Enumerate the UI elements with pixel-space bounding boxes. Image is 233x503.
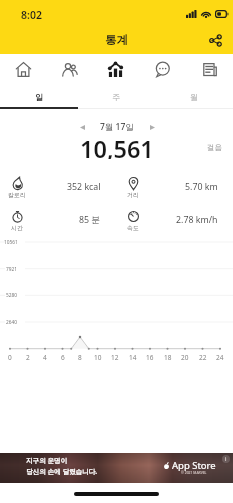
- staticText: 14: [129, 353, 137, 362]
- button[interactable]: 월: [155, 86, 233, 108]
- button[interactable]: 일: [0, 86, 77, 108]
- staticText: 일: [35, 92, 43, 102]
- staticText: 칼로리: [8, 191, 26, 199]
- button[interactable]: Next day: [143, 118, 161, 136]
- staticText: 속도: [127, 224, 139, 232]
- button[interactable]: Friends: [0, 54, 46, 84]
- button[interactable]: Previous day: [73, 118, 91, 136]
- button[interactable]: 칼로리: [0, 172, 116, 205]
- staticText: 월: [190, 92, 198, 102]
- staticText: 16: [146, 353, 154, 362]
- button[interactable]: 지구의 운명이: [0, 453, 233, 483]
- staticText: 통계: [105, 33, 128, 47]
- button[interactable]: Chats: [46, 54, 92, 84]
- button[interactable]: Open Chat: [139, 54, 186, 84]
- staticText: © 2021 MARVEL: [181, 470, 207, 475]
- staticText: 8: [78, 353, 82, 362]
- button[interactable]: 시간: [0, 205, 116, 238]
- staticText: 2.78 km/h: [176, 214, 218, 226]
- staticText: 주: [112, 92, 120, 102]
- staticText: 20: [181, 353, 189, 362]
- staticText: 8:02: [21, 8, 42, 22]
- staticText: 10: [94, 353, 102, 362]
- button[interactable]: Share: [203, 28, 227, 52]
- staticText: 18: [164, 353, 172, 362]
- staticText: 시간: [11, 224, 23, 232]
- button[interactable]: Ad info: [222, 455, 230, 463]
- staticText: 5280: [6, 292, 17, 299]
- button[interactable]: 거리: [116, 172, 233, 205]
- button[interactable]: Stats: [92, 54, 139, 84]
- staticText: 거리: [127, 191, 139, 199]
- staticText: 2640: [6, 319, 17, 326]
- staticText: 22: [199, 353, 207, 362]
- staticText: App Store: [172, 459, 216, 472]
- staticText: 10,561: [80, 133, 154, 159]
- staticText: 2: [26, 353, 30, 362]
- staticText: 7921: [6, 266, 17, 273]
- staticText: 85 분: [79, 214, 101, 226]
- staticText: 0: [8, 353, 12, 362]
- staticText: 5.70 km: [185, 181, 218, 193]
- button[interactable]: 속도: [116, 205, 233, 238]
- button[interactable]: More: [186, 54, 233, 84]
- staticText: 7월 17일: [100, 121, 134, 133]
- staticText: 걸음: [207, 143, 222, 152]
- staticText: 4: [43, 353, 47, 362]
- staticText: 지구의 운명이: [26, 456, 68, 465]
- staticText: 352 kcal: [67, 181, 101, 193]
- staticText: 12: [111, 353, 119, 362]
- staticText: 10561: [4, 239, 18, 246]
- staticText: i: [225, 456, 227, 462]
- staticText: 6: [61, 353, 65, 362]
- button[interactable]: 주: [77, 86, 155, 108]
- staticText: 당신의 손에 달렸습니다.: [26, 467, 98, 476]
- staticText: 24: [216, 353, 224, 362]
